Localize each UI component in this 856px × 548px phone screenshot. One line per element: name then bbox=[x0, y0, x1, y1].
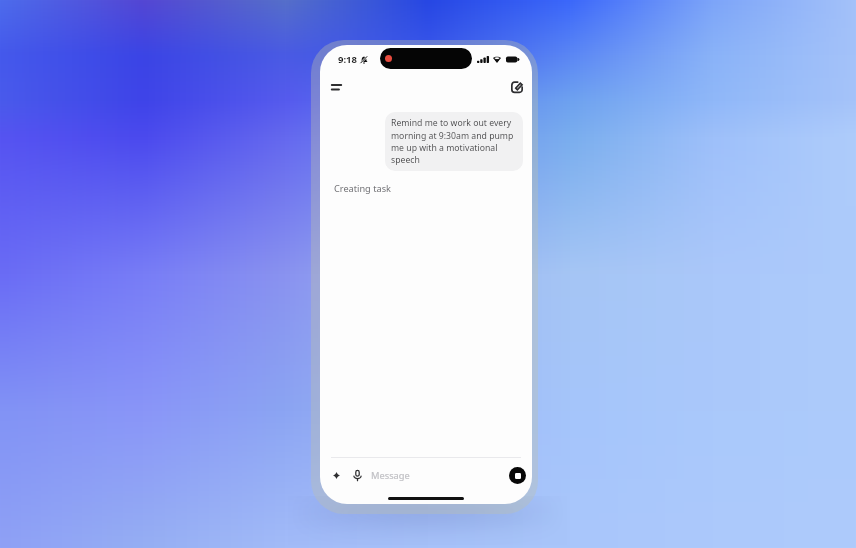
button[interactable]: Voice input bbox=[350, 468, 365, 483]
staticText: Creating task bbox=[334, 182, 391, 195]
button[interactable]: Stop bbox=[509, 467, 526, 484]
staticText: Remind me to work out every morning at 9… bbox=[391, 117, 514, 165]
button[interactable]: New chat bbox=[506, 76, 528, 98]
button[interactable]: Menu bbox=[325, 76, 347, 98]
button[interactable]: Add bbox=[329, 468, 344, 483]
staticText: Message bbox=[371, 469, 410, 482]
staticText: 9:18 bbox=[338, 53, 357, 66]
